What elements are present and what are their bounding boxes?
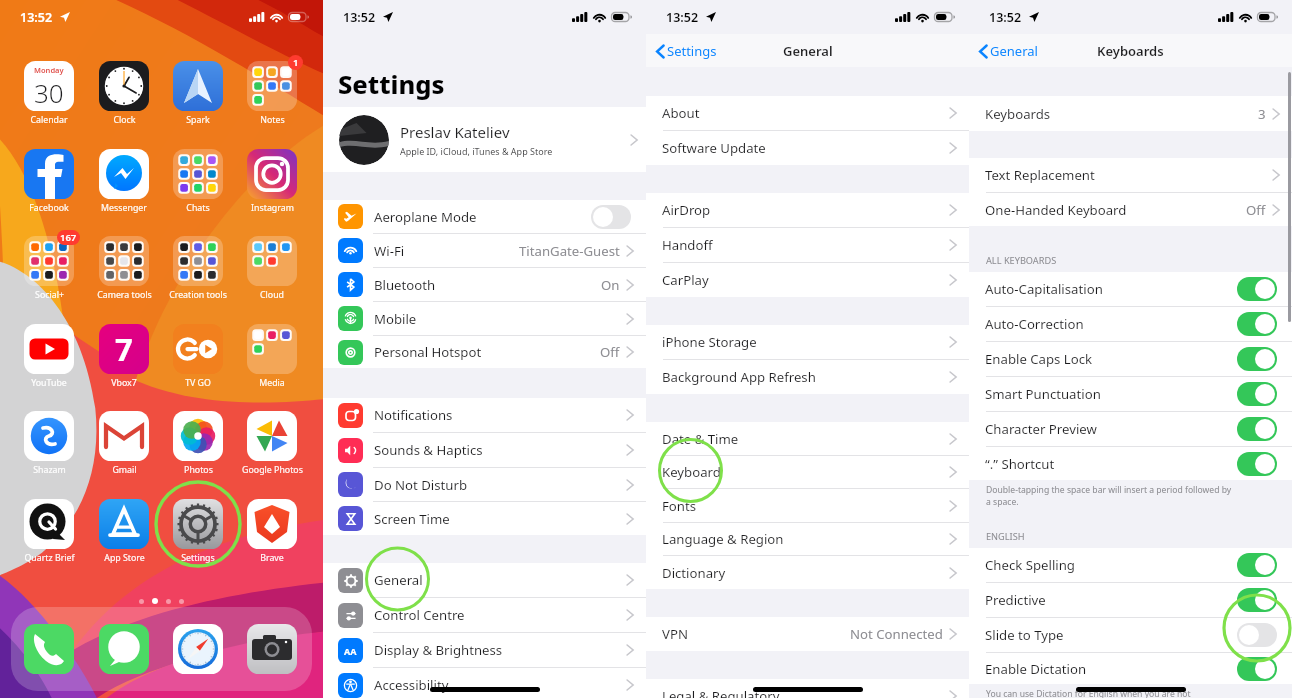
button[interactable]: Auto-Capitalisation bbox=[969, 272, 1292, 306]
button[interactable] bbox=[1237, 277, 1277, 301]
button[interactable]: Dictionary bbox=[646, 556, 969, 589]
button[interactable]: One-Handed Keyboard bbox=[969, 193, 1292, 226]
button[interactable]: App Store bbox=[99, 499, 149, 549]
button[interactable] bbox=[1237, 623, 1277, 647]
staticText: Messenger bbox=[101, 202, 147, 214]
staticText: Keyboards bbox=[1097, 42, 1164, 60]
button[interactable]: Check Spelling bbox=[969, 548, 1292, 582]
button[interactable]: Back to General bbox=[979, 42, 1038, 60]
button[interactable]: Date & Time bbox=[646, 422, 969, 455]
staticText: One-Handed Keyboard bbox=[985, 201, 1127, 219]
button[interactable]: Slide to Type bbox=[969, 618, 1292, 652]
button[interactable]: Quartz Brief bbox=[24, 499, 74, 549]
button[interactable]: Instagram bbox=[247, 149, 297, 199]
button[interactable] bbox=[1237, 657, 1277, 681]
button[interactable] bbox=[1237, 452, 1277, 476]
staticText: Notes bbox=[260, 114, 285, 126]
button[interactable] bbox=[1237, 382, 1277, 406]
button[interactable]: Predictive bbox=[969, 583, 1292, 617]
staticText: Monday bbox=[34, 65, 64, 75]
button[interactable]: Notes bbox=[247, 61, 297, 111]
button[interactable]: About bbox=[646, 96, 969, 130]
staticText: Display & Brightness bbox=[374, 641, 503, 659]
button[interactable]: Messages bbox=[99, 624, 149, 674]
button[interactable]: Back to Settings bbox=[656, 42, 717, 60]
button[interactable]: Phone bbox=[24, 624, 74, 674]
button[interactable]: Text Replacement bbox=[969, 158, 1292, 192]
staticText: Settings bbox=[338, 67, 445, 102]
staticText: AA bbox=[344, 645, 357, 657]
button[interactable]: Preslav Kateliev bbox=[323, 107, 646, 172]
button[interactable]: Google Photos bbox=[247, 411, 297, 461]
staticText: Clock bbox=[113, 114, 136, 126]
button[interactable]: Character Preview bbox=[969, 412, 1292, 446]
button[interactable]: Language & Region bbox=[646, 523, 969, 555]
button[interactable]: Calendar bbox=[24, 61, 74, 111]
button[interactable]: Creation tools bbox=[173, 236, 223, 286]
staticText: Mobile bbox=[374, 310, 417, 328]
button[interactable]: Software Update bbox=[646, 131, 969, 165]
staticText: Fonts bbox=[662, 497, 697, 515]
staticText: Do Not Disturb bbox=[374, 476, 468, 494]
staticText: Keyboards bbox=[985, 105, 1051, 123]
button[interactable]: Handoff bbox=[646, 228, 969, 262]
button[interactable]: Chats bbox=[173, 149, 223, 199]
button[interactable] bbox=[1237, 347, 1277, 371]
staticText: Auto-Capitalisation bbox=[985, 280, 1103, 298]
button[interactable]: AA bbox=[323, 633, 646, 667]
staticText: Media bbox=[259, 377, 285, 389]
button[interactable]: Safari bbox=[173, 624, 223, 674]
staticText: Date & Time bbox=[662, 430, 739, 448]
button[interactable]: Control Centre bbox=[323, 598, 646, 632]
button[interactable]: Spark bbox=[173, 61, 223, 111]
button[interactable]: iPhone Storage bbox=[646, 325, 969, 359]
button[interactable] bbox=[1237, 588, 1277, 612]
button[interactable]: Keyboards bbox=[969, 96, 1292, 131]
button[interactable]: Keyboard bbox=[646, 456, 969, 488]
button[interactable]: Shazam bbox=[24, 411, 74, 461]
button[interactable]: YouTube bbox=[24, 324, 74, 374]
button[interactable]: “.” Shortcut bbox=[969, 447, 1292, 480]
button[interactable]: Wi-Fi bbox=[323, 234, 646, 267]
button[interactable]: Smart Punctuation bbox=[969, 377, 1292, 411]
button[interactable]: Camera tools bbox=[99, 236, 149, 286]
button[interactable]: Camera bbox=[247, 624, 297, 674]
button[interactable]: Personal Hotspot bbox=[323, 336, 646, 368]
button[interactable] bbox=[591, 205, 631, 229]
button[interactable]: Social+ bbox=[24, 236, 74, 286]
button[interactable]: Vbox7 bbox=[99, 324, 149, 374]
button[interactable]: TV GO bbox=[173, 324, 223, 374]
button[interactable]: Gmail bbox=[99, 411, 149, 461]
button[interactable]: Screen Time bbox=[323, 502, 646, 535]
button[interactable]: Bluetooth bbox=[323, 268, 646, 301]
button[interactable]: Mobile bbox=[323, 302, 646, 335]
button[interactable]: CarPlay bbox=[646, 263, 969, 297]
button[interactable]: Background App Refresh bbox=[646, 360, 969, 394]
button[interactable] bbox=[1237, 417, 1277, 441]
button[interactable]: Photos bbox=[173, 411, 223, 461]
button[interactable]: Enable Caps Lock bbox=[969, 342, 1292, 376]
button[interactable]: Fonts bbox=[646, 489, 969, 522]
button[interactable]: Clock bbox=[99, 61, 149, 111]
button[interactable]: Media bbox=[247, 324, 297, 374]
staticText: YouTube bbox=[31, 377, 67, 389]
button[interactable]: Auto-Correction bbox=[969, 307, 1292, 341]
button[interactable]: AirDrop bbox=[646, 193, 969, 227]
button[interactable]: VPN bbox=[646, 617, 969, 651]
button[interactable]: Accessibility bbox=[323, 668, 646, 698]
button[interactable]: Legal & Regulatory bbox=[646, 679, 969, 698]
button[interactable]: Do Not Disturb bbox=[323, 468, 646, 501]
button[interactable]: Brave bbox=[247, 499, 297, 549]
button[interactable]: Sounds & Haptics bbox=[323, 433, 646, 467]
button[interactable]: Settings bbox=[173, 499, 223, 549]
button[interactable]: Enable Dictation bbox=[969, 653, 1292, 684]
button[interactable]: Cloud bbox=[247, 236, 297, 286]
staticText: Software Update bbox=[662, 139, 766, 157]
button[interactable]: Facebook bbox=[24, 149, 74, 199]
button[interactable]: Messenger bbox=[99, 149, 149, 199]
button[interactable] bbox=[1237, 312, 1277, 336]
button[interactable] bbox=[1237, 553, 1277, 577]
button[interactable]: General bbox=[323, 563, 646, 597]
button[interactable]: Aeroplane Mode bbox=[323, 200, 646, 233]
button[interactable]: Notifications bbox=[323, 398, 646, 432]
